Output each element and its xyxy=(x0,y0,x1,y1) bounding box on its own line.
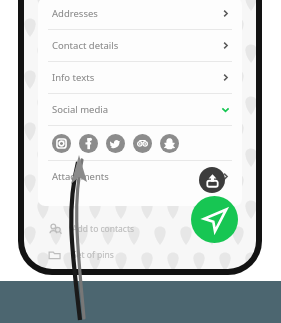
button[interactable]: Send xyxy=(191,196,238,243)
button[interactable]: Add to contacts xyxy=(24,220,256,238)
button[interactable]: Facebook xyxy=(79,134,98,153)
button[interactable]: Snapchat xyxy=(160,134,179,153)
button[interactable]: Social media xyxy=(38,94,242,125)
button[interactable]: Contact details xyxy=(38,30,242,61)
button[interactable]: Share xyxy=(199,167,225,193)
button[interactable]: Instagram xyxy=(52,134,71,153)
button[interactable]: TripAdvisor xyxy=(133,134,152,153)
staticText: Contact details xyxy=(52,39,119,52)
staticText: Info texts xyxy=(52,71,95,84)
staticText: Set of pins xyxy=(72,249,114,261)
staticText: Add to contacts xyxy=(72,223,135,235)
button[interactable]: Addresses xyxy=(38,0,242,29)
staticText: Addresses xyxy=(52,7,98,20)
button[interactable]: Set of pins xyxy=(24,246,256,264)
button[interactable]: Info texts xyxy=(38,62,242,93)
button[interactable]: Attachments xyxy=(38,161,242,192)
button[interactable]: Twitter xyxy=(106,134,125,153)
staticText: Social media xyxy=(52,103,109,116)
staticText: Attachments xyxy=(52,170,109,183)
